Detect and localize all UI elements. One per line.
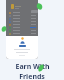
button[interactable] (9, 23, 36, 26)
button[interactable] (9, 17, 36, 20)
button[interactable] (9, 32, 36, 35)
staticText: Friends (19, 72, 45, 80)
button[interactable] (9, 14, 36, 17)
button[interactable] (9, 20, 36, 23)
button[interactable] (9, 26, 36, 29)
staticText: Earn With (15, 62, 50, 72)
button[interactable]: Profile (11, 4, 14, 9)
button[interactable] (9, 29, 36, 32)
button[interactable] (9, 11, 36, 14)
